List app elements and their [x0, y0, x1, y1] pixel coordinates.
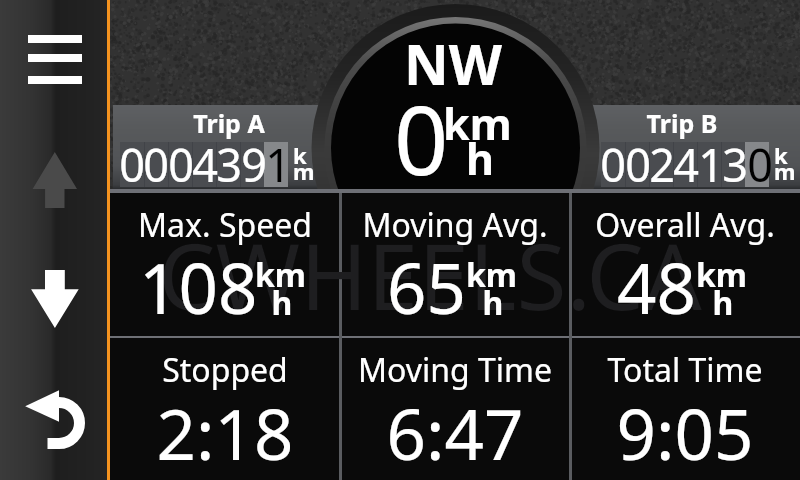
button[interactable]	[110, 338, 340, 480]
staticText: Overall Avg.	[555, 203, 800, 247]
staticText: 2:18	[95, 386, 355, 480]
staticText: 0	[593, 134, 633, 195]
staticText: 0	[161, 134, 201, 195]
staticText: 3	[715, 134, 755, 195]
staticText: 9:05	[555, 386, 800, 480]
staticText: CWHEELS.CA	[80, 213, 780, 337]
button[interactable]	[586, 105, 800, 189]
staticText: h	[252, 281, 312, 325]
staticText: 1	[691, 134, 731, 195]
staticText: h	[693, 281, 753, 325]
staticText: Total Time	[555, 348, 800, 392]
staticText: m	[774, 156, 796, 186]
staticText: 3	[209, 134, 249, 195]
staticText: 0	[136, 134, 176, 195]
staticText: m	[293, 156, 315, 186]
staticText: 9	[234, 134, 274, 195]
button[interactable]	[340, 338, 570, 480]
button[interactable]	[113, 105, 325, 189]
staticText: 65	[387, 240, 466, 334]
staticText: k	[774, 140, 788, 170]
staticText: Moving Avg.	[325, 203, 585, 247]
button[interactable]	[570, 193, 800, 336]
staticText: 4	[185, 134, 225, 195]
staticText: Max. Speed	[95, 203, 355, 247]
button[interactable]: Scroll down	[10, 270, 100, 328]
staticText: km	[696, 253, 748, 297]
staticText: k	[293, 140, 307, 170]
staticText: Trip B	[582, 106, 782, 140]
staticText: 0	[618, 134, 658, 195]
button[interactable]: Back	[18, 383, 94, 455]
staticText: 0	[394, 73, 449, 202]
staticText: 4	[666, 134, 706, 195]
staticText: km	[443, 94, 512, 153]
button[interactable]: Scroll up	[10, 152, 100, 208]
staticText: 0	[740, 134, 780, 195]
button[interactable]	[110, 193, 340, 336]
button[interactable]	[340, 193, 570, 336]
button[interactable]	[570, 338, 800, 480]
staticText: Moving Time	[325, 348, 585, 392]
button[interactable]: Menu	[14, 18, 94, 102]
staticText: km	[466, 253, 518, 297]
staticText: Trip A	[129, 106, 329, 140]
staticText: km	[255, 253, 307, 297]
staticText: 1	[258, 134, 298, 195]
staticText: 0	[112, 134, 152, 195]
staticText: 6:47	[325, 386, 585, 480]
staticText: 2	[642, 134, 682, 195]
staticText: NW	[404, 26, 502, 101]
staticText: Stopped	[95, 348, 355, 392]
staticText: 108	[139, 240, 258, 334]
staticText: h	[466, 129, 494, 188]
staticText: h	[463, 281, 523, 325]
staticText: 48	[617, 240, 696, 334]
